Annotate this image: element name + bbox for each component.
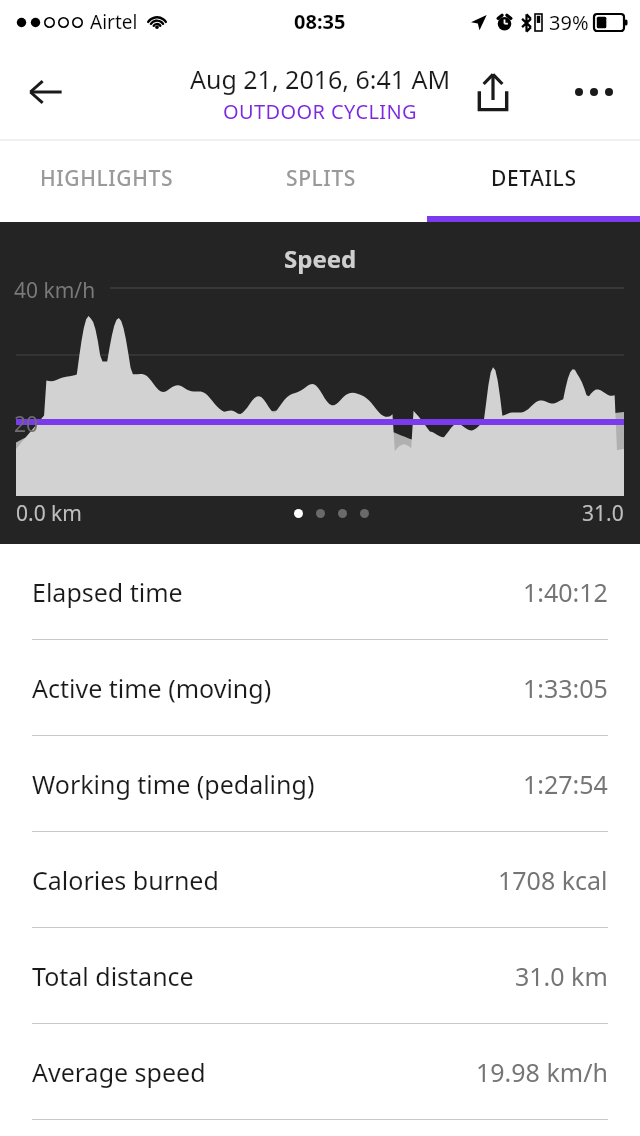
staticText: 1:40:12 xyxy=(523,575,608,609)
staticText: Speed xyxy=(284,242,357,275)
staticText: Elapsed time xyxy=(32,575,183,609)
button[interactable]: HIGHLIGHTS xyxy=(0,140,214,222)
staticText: 1:33:05 xyxy=(523,671,608,705)
staticText: DETAILS xyxy=(491,164,577,193)
staticText: 1:27:54 xyxy=(523,767,608,801)
button[interactable]: More options xyxy=(564,62,624,122)
staticText: Average speed xyxy=(32,1055,206,1089)
staticText: 19.98 km/h xyxy=(476,1055,608,1089)
button[interactable]: Total distance xyxy=(0,928,640,1024)
staticText: SPLITS xyxy=(286,164,356,193)
staticText: Calories burned xyxy=(32,863,219,897)
staticText: Total distance xyxy=(32,959,194,993)
button[interactable]: Working time (pedaling) xyxy=(0,736,640,832)
button[interactable]: Average speed xyxy=(0,1024,640,1120)
button[interactable]: Elapsed time xyxy=(0,544,640,640)
staticText: Airtel xyxy=(90,9,138,35)
button[interactable]: Active time (moving) xyxy=(0,640,640,736)
staticText: 39% xyxy=(549,9,589,36)
staticText: Working time (pedaling) xyxy=(32,767,315,801)
button[interactable]: SPLITS xyxy=(214,140,427,222)
staticText: HIGHLIGHTS xyxy=(40,164,174,193)
staticText: 20 xyxy=(14,410,39,439)
staticText: 08:35 xyxy=(294,8,346,35)
button[interactable]: Back xyxy=(18,64,74,120)
staticText: 1708 kcal xyxy=(498,863,608,897)
staticText: 31.0 km xyxy=(515,959,608,993)
staticText: Aug 21, 2016, 6:41 AM xyxy=(190,62,451,96)
button[interactable]: DETAILS xyxy=(427,140,640,222)
staticText: 0.0 km xyxy=(16,499,82,528)
staticText: Active time (moving) xyxy=(32,671,272,705)
staticText: 40 km/h xyxy=(14,276,96,305)
button[interactable]: Share xyxy=(464,63,522,121)
staticText: 31.0 xyxy=(582,499,624,528)
button[interactable]: Calories burned xyxy=(0,832,640,928)
staticText: OUTDOOR CYCLING xyxy=(223,98,418,125)
